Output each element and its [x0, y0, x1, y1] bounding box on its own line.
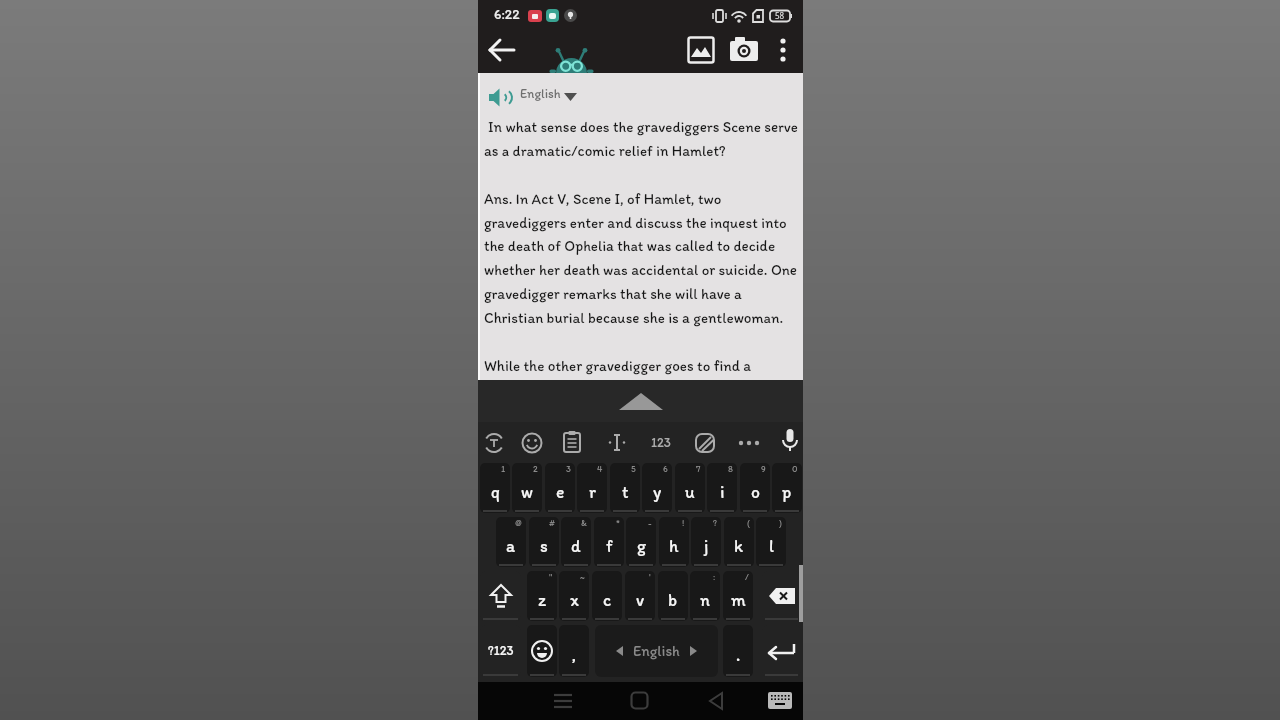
staticText: h [669, 535, 679, 556]
staticText: 3 [566, 463, 571, 474]
staticText: ) [779, 517, 782, 528]
button[interactable]: ' [625, 571, 655, 621]
staticText: m [731, 589, 746, 610]
button[interactable]: ! [659, 517, 689, 567]
staticText: as a dramatic/comic relief in Hamlet? [484, 142, 726, 160]
button[interactable]: b [658, 571, 688, 621]
button[interactable] [489, 86, 510, 109]
button[interactable]: 6 [642, 463, 672, 513]
button[interactable]: ) [756, 517, 786, 567]
staticText: w [521, 481, 533, 502]
staticText: : [713, 571, 716, 582]
staticText: ( [747, 517, 750, 528]
staticText: x [570, 589, 579, 610]
staticText: 0 [792, 463, 798, 474]
button[interactable]: c [592, 571, 622, 621]
staticText: 58 [775, 10, 785, 21]
button[interactable]: @ [496, 517, 526, 567]
staticText: whether her death was accidental or suic… [484, 261, 797, 279]
button[interactable]: 0 [772, 463, 802, 513]
button[interactable]: 5 [610, 463, 640, 513]
staticText: ' [649, 571, 651, 582]
button[interactable] [552, 690, 574, 712]
button[interactable]: - [626, 517, 656, 567]
button[interactable]: " [527, 571, 557, 621]
staticText: n [700, 589, 710, 610]
button[interactable] [778, 428, 802, 458]
button[interactable]: 3 [545, 463, 575, 513]
button[interactable] [480, 571, 521, 621]
staticText: English [633, 642, 680, 660]
button[interactable]: / [723, 571, 753, 621]
staticText: p [782, 481, 792, 502]
staticText: gravediggers enter and discuss the inque… [484, 214, 787, 232]
staticText: e [556, 481, 565, 502]
staticText: r [589, 481, 596, 502]
staticText: * [616, 517, 620, 528]
button[interactable]: 7 [675, 463, 705, 513]
button[interactable] [762, 625, 801, 677]
button[interactable] [630, 691, 650, 711]
button[interactable] [560, 430, 584, 454]
button[interactable] [762, 571, 801, 621]
button[interactable]: English [595, 625, 718, 677]
staticText: y [653, 481, 662, 502]
button[interactable] [687, 36, 715, 64]
staticText: j [704, 535, 709, 556]
button[interactable] [730, 37, 760, 63]
staticText: l [769, 535, 774, 556]
staticText: 5 [631, 463, 636, 474]
button[interactable]: 2 [512, 463, 542, 513]
button[interactable]: ~ [559, 571, 589, 621]
staticText: # [549, 517, 555, 528]
button[interactable] [527, 625, 557, 677]
button[interactable] [520, 431, 544, 455]
button[interactable]: , [559, 625, 589, 677]
staticText: t [622, 481, 629, 502]
staticText: c [603, 589, 612, 610]
button[interactable]: 1 [480, 463, 510, 513]
staticText: . [736, 644, 741, 665]
button[interactable] [736, 431, 764, 455]
staticText: 123 [651, 435, 671, 451]
button[interactable]: 123 [646, 431, 676, 455]
button[interactable]: * [594, 517, 624, 567]
button[interactable]: ? [691, 517, 721, 567]
staticText: 1 [501, 463, 506, 474]
staticText: - [648, 517, 652, 528]
staticText: g [637, 535, 646, 556]
staticText: v [636, 589, 645, 610]
button[interactable]: : [690, 571, 720, 621]
button[interactable]: ?123 [480, 625, 521, 677]
button[interactable] [486, 34, 518, 66]
button[interactable] [693, 431, 717, 455]
staticText: @ [515, 517, 522, 528]
staticText: z [538, 589, 547, 610]
button[interactable]: English [520, 86, 566, 106]
button[interactable]: 4 [577, 463, 607, 513]
button[interactable] [478, 380, 803, 422]
button[interactable] [773, 36, 793, 66]
button[interactable] [768, 692, 792, 709]
staticText: s [540, 535, 548, 556]
button[interactable]: # [529, 517, 559, 567]
button[interactable] [605, 431, 629, 455]
staticText: 6:22 [494, 6, 520, 23]
button[interactable]: 9 [740, 463, 770, 513]
button[interactable]: ( [724, 517, 754, 567]
staticText: ? [713, 517, 717, 528]
button[interactable]: . [723, 625, 753, 677]
staticText: k [734, 535, 744, 556]
staticText: the death of Ophelia that was called to … [484, 237, 776, 255]
staticText: " [549, 571, 553, 582]
staticText: ?123 [488, 643, 514, 659]
staticText: & [581, 517, 587, 528]
staticText: , [572, 644, 577, 665]
button[interactable]: & [561, 517, 591, 567]
staticText: English [520, 86, 561, 102]
staticText: 7 [696, 463, 701, 474]
button[interactable] [707, 691, 727, 711]
button[interactable]: 8 [707, 463, 737, 513]
button[interactable] [482, 431, 506, 455]
staticText: i [720, 481, 725, 502]
